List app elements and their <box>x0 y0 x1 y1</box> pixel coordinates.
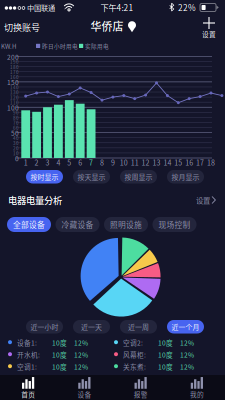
staticText: 190 <box>10 59 19 65</box>
staticText: 12% <box>180 350 194 359</box>
staticText: 10度 <box>158 338 173 347</box>
staticText: 130 <box>10 89 19 96</box>
staticText: 按时显示 <box>30 172 58 182</box>
staticText: 按周显示 <box>124 172 152 182</box>
button[interactable]: 我的 <box>169 375 225 399</box>
button[interactable]: 近一小时 <box>26 320 63 333</box>
button[interactable]: 按月显示 <box>167 170 204 183</box>
staticText: 设置 <box>196 195 210 205</box>
staticText: 14 <box>163 157 171 168</box>
button[interactable]: 按周显示 <box>120 170 157 183</box>
staticText: 报警 <box>134 389 148 399</box>
staticText: 设备 <box>77 389 91 399</box>
staticText: 80 <box>13 114 19 121</box>
staticText: 150 <box>7 77 19 87</box>
staticText: 关东煮: <box>123 362 146 371</box>
button[interactable]: 按天显示 <box>73 170 110 183</box>
staticText: 140 <box>10 84 19 91</box>
staticText: 近一个月 <box>171 322 199 332</box>
staticText: 10 <box>120 157 128 168</box>
staticText: 10 <box>13 150 19 156</box>
button[interactable]: 近一周 <box>120 320 157 333</box>
staticText: 9 <box>111 157 115 168</box>
staticText: 18 <box>207 157 215 168</box>
staticText: 0 <box>15 153 19 163</box>
staticText: 华侨店 <box>90 18 123 34</box>
staticText: 17 <box>196 157 204 168</box>
staticText: 12% <box>180 338 194 347</box>
staticText: 开水机: <box>17 350 40 359</box>
staticText: 11 <box>131 157 139 168</box>
staticText: 12% <box>180 362 194 371</box>
staticText: 实际用电 <box>85 42 109 50</box>
staticText: 200 <box>7 52 19 62</box>
staticText: 全部设备 <box>13 219 45 230</box>
staticText: 110 <box>10 99 19 106</box>
staticText: 50 <box>11 128 19 138</box>
button[interactable]: 照明设施 <box>104 217 148 232</box>
staticText: 昨日小时用电 <box>42 42 78 50</box>
staticText: 近一天 <box>81 322 102 332</box>
button[interactable]: 冷藏设备 <box>55 217 99 232</box>
staticText: 30 <box>13 140 19 146</box>
staticText: 120 <box>10 94 19 101</box>
staticText: 12 <box>142 157 150 168</box>
staticText: 10度 <box>158 350 173 359</box>
staticText: 按天显示 <box>77 172 105 182</box>
staticText: 首页 <box>21 389 35 399</box>
staticText: 160 <box>10 74 19 80</box>
staticText: 按月显示 <box>171 172 199 182</box>
staticText: 60 <box>13 125 19 131</box>
staticText: 照明设施 <box>110 219 142 230</box>
button[interactable]: 首页 <box>0 375 56 399</box>
staticText: 现场控制 <box>158 219 190 230</box>
button[interactable]: 报警 <box>113 375 169 399</box>
button[interactable]: 设备 <box>56 375 112 399</box>
staticText: KW.H <box>1 42 16 50</box>
staticText: 8 <box>100 157 104 168</box>
staticText: 10度 <box>52 350 67 359</box>
staticText: 设备1: <box>17 338 37 347</box>
staticText: 我的 <box>190 389 204 399</box>
staticText: 切换账号 <box>4 20 40 33</box>
button[interactable]: 近一个月 <box>167 320 204 333</box>
staticText: 2 <box>35 157 39 168</box>
staticText: 40 <box>13 135 19 141</box>
staticText: 下午4:21 <box>100 1 133 13</box>
staticText: 空调2: <box>123 338 143 347</box>
staticText: 16 <box>185 157 193 168</box>
staticText: 180 <box>10 64 19 70</box>
staticText: 10度 <box>158 362 173 371</box>
staticText: 近一小时 <box>30 322 58 332</box>
staticText: 20 <box>13 145 19 151</box>
staticText: 6 <box>78 157 82 168</box>
staticText: 空调1: <box>17 362 37 371</box>
button[interactable]: 切换账号 <box>4 17 44 37</box>
button[interactable]: 全部设备 <box>7 217 51 232</box>
button[interactable]: 现场控制 <box>152 217 196 232</box>
staticText: 13 <box>152 157 160 168</box>
staticText: 1 <box>24 157 28 168</box>
button[interactable]: 近一天 <box>73 320 110 333</box>
button[interactable]: 设置 <box>195 16 223 39</box>
staticText: 3 <box>45 157 49 168</box>
staticText: 12% <box>74 350 88 359</box>
staticText: 中国联通 <box>27 2 55 13</box>
staticText: 12% <box>74 362 88 371</box>
staticText: 15 <box>174 157 182 168</box>
staticText: 设置 <box>202 29 216 39</box>
staticText: 电器电量分析 <box>8 193 62 207</box>
staticText: 70 <box>13 119 19 126</box>
staticText: 90 <box>13 109 19 116</box>
staticText: 10度 <box>52 362 67 371</box>
staticText: 风幕柜: <box>123 350 146 359</box>
button[interactable]: 设置 <box>187 193 217 207</box>
button[interactable]: 按时显示 <box>26 170 63 183</box>
staticText: 12% <box>74 338 88 347</box>
staticText: 近一周 <box>128 322 149 332</box>
staticText: 10度 <box>52 338 67 347</box>
staticText: 22% <box>178 1 196 13</box>
staticText: 冷藏设备 <box>61 219 93 230</box>
staticText: 170 <box>10 69 19 75</box>
staticText: 5 <box>67 157 71 168</box>
